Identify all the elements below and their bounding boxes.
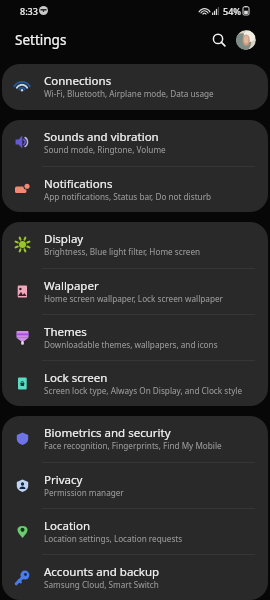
staticText: Settings <box>15 31 67 49</box>
button[interactable]: Search <box>205 26 233 54</box>
button[interactable]: Wallpaper <box>2 269 268 314</box>
staticText: Face recognition, Fingerprints, Find My … <box>44 440 222 451</box>
button[interactable]: Biometrics and security <box>2 416 268 462</box>
staticText: Sounds and vibration <box>44 129 159 145</box>
staticText: 54% <box>223 5 241 17</box>
staticText: Lock screen <box>44 370 108 386</box>
staticText: Privacy <box>44 472 83 488</box>
staticText: Home screen wallpaper, Lock screen wallp… <box>44 293 223 304</box>
button[interactable]: Sounds and vibration <box>2 120 268 166</box>
button[interactable]: Notifications <box>2 167 268 212</box>
button[interactable]: Lock screen <box>2 361 268 406</box>
staticText: Permission manager <box>44 487 124 498</box>
staticText: Accounts and backup <box>44 564 160 580</box>
staticText: Location settings, Location requests <box>44 533 183 544</box>
staticText: Samsung Cloud, Smart Switch <box>44 579 159 590</box>
staticText: App notifications, Status bar, Do not di… <box>44 191 212 202</box>
staticText: Notifications <box>44 176 113 192</box>
button[interactable]: Account <box>236 30 256 50</box>
staticText: Themes <box>44 324 87 340</box>
button[interactable]: Accounts and backup <box>2 555 268 600</box>
staticText: Brightness, Blue light filter, Home scre… <box>44 246 201 257</box>
staticText: Sound mode, Ringtone, Volume <box>44 144 166 155</box>
staticText: Wi-Fi, Bluetooth, Airplane mode, Data us… <box>44 88 214 99</box>
staticText: Connections <box>44 73 112 89</box>
button[interactable]: Display <box>2 222 268 268</box>
staticText: Location <box>44 518 91 534</box>
staticText: 8:33 <box>20 5 38 17</box>
staticText: Display <box>44 231 84 247</box>
staticText: Downloadable themes, wallpapers, and ico… <box>44 339 218 350</box>
button[interactable]: Location <box>2 509 268 554</box>
staticText: Screen lock type, Always On Display, and… <box>44 385 243 396</box>
staticText: Biometrics and security <box>44 425 171 441</box>
staticText: Wallpaper <box>44 278 99 294</box>
button[interactable]: Connections <box>2 64 268 110</box>
button[interactable]: Privacy <box>2 463 268 508</box>
button[interactable]: Themes <box>2 315 268 360</box>
